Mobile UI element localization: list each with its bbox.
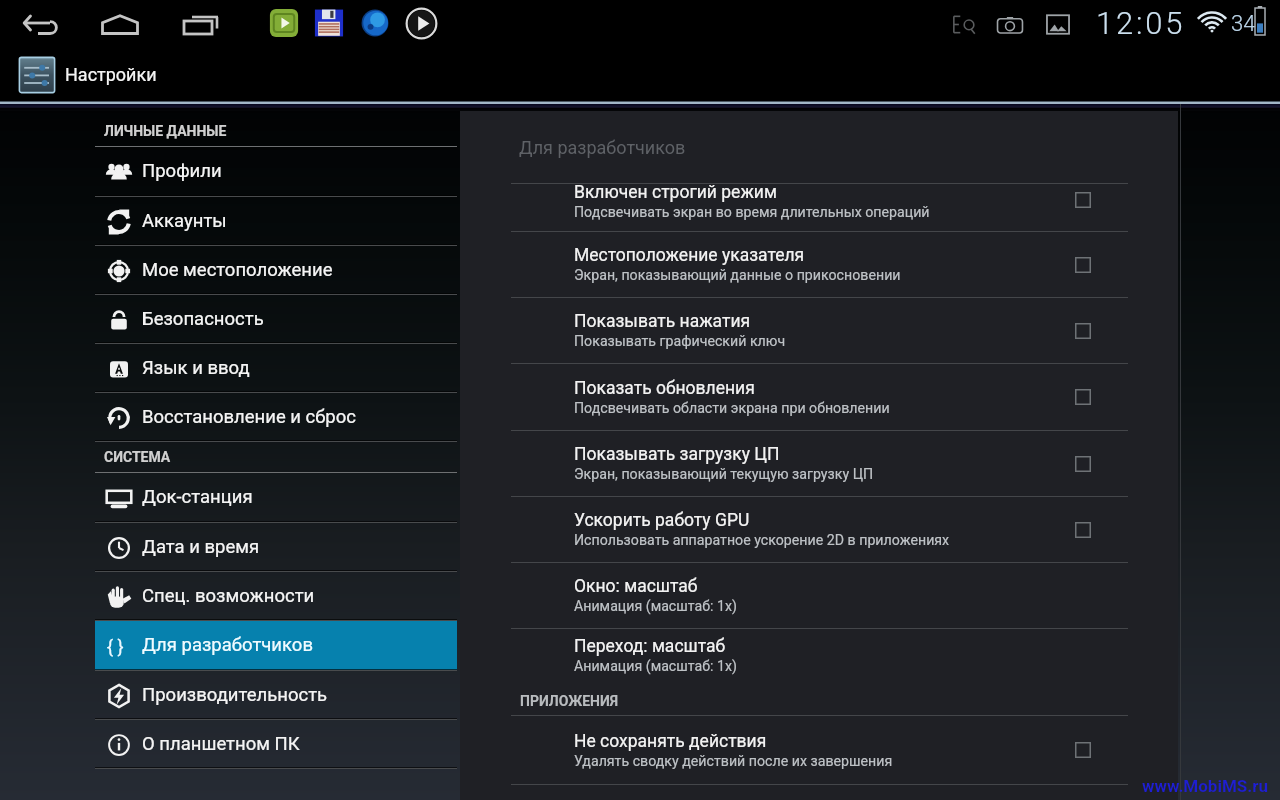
button[interactable]: Безопасность (95, 295, 457, 344)
button[interactable]: Back (8, 0, 64, 48)
button[interactable]: Recent apps (168, 0, 224, 48)
button[interactable]: О планшетном ПК (95, 720, 457, 769)
button[interactable]: Переход: масштаб (460, 629, 1178, 682)
staticText: Подсвечивать области экрана при обновлен… (574, 400, 890, 417)
staticText: О планшетном ПК (142, 733, 300, 755)
staticText: Показывать загрузку ЦП (574, 444, 780, 465)
staticText: Показать обновления (574, 378, 755, 399)
staticText: Настройки (65, 64, 157, 85)
staticText: Включен строгий режим (574, 182, 777, 203)
button[interactable]: Не сохранять действия (460, 716, 1178, 784)
staticText: Подсвечивать экран во время длительных о… (574, 204, 930, 221)
button[interactable]: Производительность (95, 671, 457, 720)
button[interactable]: Профили (95, 147, 457, 197)
button[interactable]: { } (95, 621, 457, 671)
button[interactable]: File manager (313, 7, 345, 39)
button[interactable]: Аккаунты (95, 197, 457, 246)
button[interactable]: Язык и ввод (95, 344, 457, 393)
staticText: Показывать графический ключ (574, 333, 786, 350)
button[interactable]: Browser (359, 7, 391, 39)
staticText: Анимация (масштаб: 1x) (574, 658, 737, 675)
button[interactable]: Восстановление и сброс (95, 393, 457, 442)
staticText: Показывать нажатия (574, 311, 751, 332)
button[interactable]: Показывать загрузку ЦП (460, 431, 1178, 496)
staticText: Экран, показывающий данные о прикосновен… (574, 267, 901, 284)
button[interactable]: Окно: масштаб (460, 563, 1178, 628)
staticText: Анимация (масштаб: 1x) (574, 598, 737, 615)
button[interactable]: Включен строгий режим (460, 184, 1178, 231)
button[interactable]: Спец. возможности (95, 572, 457, 621)
staticText: ЛИЧНЫЕ ДАННЫЕ (104, 123, 227, 139)
staticText: www.MobiMS.ru (1142, 776, 1268, 796)
staticText: 12:05 (1096, 5, 1186, 41)
button[interactable]: Показать обновления (460, 364, 1178, 430)
staticText: Производительность (142, 684, 328, 706)
staticText: Использовать аппаратное ускорение 2D в п… (574, 532, 950, 549)
staticText: Ускорить работу GPU (574, 510, 750, 531)
staticText: Язык и ввод (142, 357, 250, 379)
staticText: ПРИЛОЖЕНИЯ (520, 693, 619, 709)
staticText: Аккаунты (142, 210, 227, 232)
staticText: Безопасность (142, 308, 264, 330)
staticText: Экран, показывающий текущую загрузку ЦП (574, 466, 874, 483)
staticText: Окно: масштаб (574, 576, 698, 597)
button[interactable]: Play (405, 7, 438, 40)
staticText: Для разработчиков (519, 137, 686, 158)
staticText: Спец. возможности (142, 585, 315, 607)
staticText: 34 (1231, 11, 1256, 37)
button[interactable]: Home (88, 0, 152, 48)
staticText: Местоположение указателя (574, 245, 805, 266)
staticText: Дата и время (142, 536, 260, 558)
button[interactable]: Video player (268, 7, 300, 39)
staticText: СИСТЕМА (104, 449, 171, 465)
button[interactable]: Показывать нажатия (460, 298, 1178, 363)
button[interactable]: Ускорить работу GPU (460, 497, 1178, 562)
staticText: Удалять сводку действий после их заверше… (574, 753, 893, 770)
button[interactable]: Дата и время (95, 523, 457, 572)
staticText: Док-станция (142, 486, 253, 508)
staticText: Не сохранять действия (574, 731, 767, 752)
staticText: { } (107, 636, 124, 657)
staticText: Восстановление и сброс (142, 406, 356, 428)
staticText: Мое местоположение (142, 259, 333, 281)
button[interactable]: Мое местоположение (95, 246, 457, 295)
staticText: Переход: масштаб (574, 636, 726, 657)
staticText: Профили (142, 160, 222, 182)
button[interactable]: Местоположение указателя (460, 232, 1178, 297)
button[interactable]: Док-станция (95, 473, 457, 523)
staticText: Для разработчиков (142, 634, 313, 656)
